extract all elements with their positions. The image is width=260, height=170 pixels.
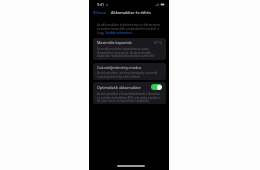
staticText: Ez az akkumulátor kapacitása az újkori á… [97,47,162,58]
staticText: Akkumulátor és töltés [111,10,151,15]
button[interactable]: Maximális kapacitás [93,38,166,60]
staticText: Az akkumulátor teljesítménye és élettart… [97,23,161,35]
staticText: Az akkumulátor elhasználódásának a lassí… [97,92,162,102]
staticText: Optimalizált akkumulátor [97,85,142,90]
staticText: Csúcsteljesítmény-modus [97,65,142,70]
staticText: Vissza [96,10,106,15]
button[interactable]: Optimalizált akkumulátor [97,84,162,90]
button[interactable]: Vissza [89,9,108,16]
staticText: Maximális kapacitás [97,40,132,45]
staticText: 87 % [154,40,162,45]
button[interactable]: Optimalizált akkumulátortöltés kapcsoló [151,84,162,90]
staticText: Az akkumulátor jelenleg támogatja a norm… [97,71,162,78]
button[interactable]: Csúcsteljesítmény-modus [93,63,166,80]
staticText: 9:41 [97,2,105,7]
